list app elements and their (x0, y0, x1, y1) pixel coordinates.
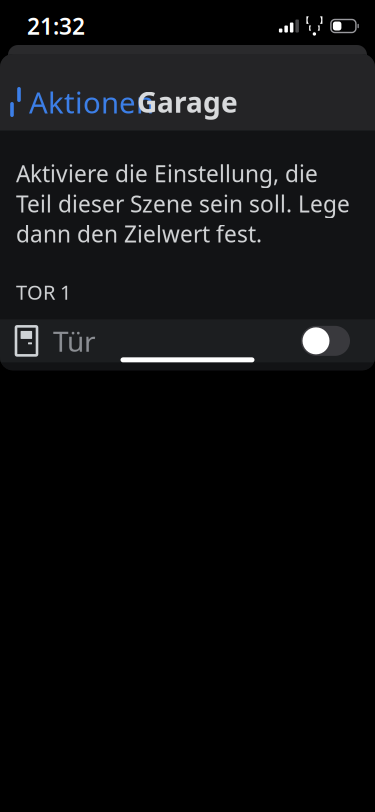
staticText: Garage (137, 83, 238, 121)
staticText: 21:32 (27, 11, 85, 41)
staticText: Tür (53, 322, 96, 359)
staticText: Aktionen (29, 82, 154, 121)
staticText: TOR 1 (16, 279, 71, 305)
button[interactable]: Aktionen (0, 74, 164, 130)
staticText: Aktiviere die Einstellung, die Teil dies… (16, 158, 350, 249)
button[interactable]: Tür (0, 319, 375, 362)
